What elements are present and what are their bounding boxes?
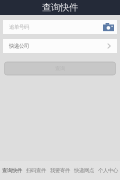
staticText: 快递网点	[74, 167, 94, 174]
staticText: 我要寄件	[50, 167, 70, 174]
staticText: 查询快件	[2, 167, 22, 174]
staticText: 扫码查件	[26, 167, 46, 174]
button[interactable]: 快递公司	[3, 39, 117, 53]
staticText: 快递公司	[9, 43, 29, 49]
staticText: 查询	[55, 65, 65, 72]
button[interactable]: 个人中心	[96, 161, 120, 180]
button[interactable]: 快递网点	[72, 161, 96, 180]
button[interactable]: 我要寄件	[48, 161, 72, 180]
button[interactable]: Scan barcode	[99, 20, 114, 34]
button[interactable]: 查询快件	[0, 161, 24, 180]
staticText: 查询快件	[42, 2, 78, 13]
staticText: 追单号码	[9, 24, 29, 30]
button[interactable]: 扫码查件	[24, 161, 48, 180]
staticText: 个人中心	[98, 167, 118, 174]
